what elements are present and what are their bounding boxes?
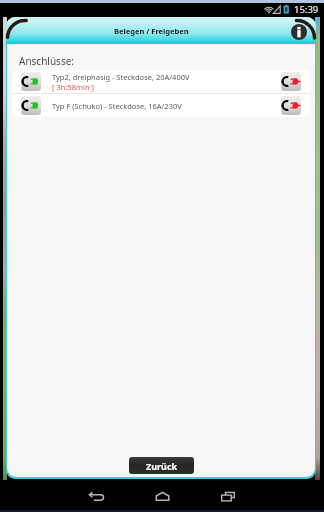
button[interactable]: Back — [79, 480, 113, 512]
button[interactable]: Freigeben — [12, 94, 310, 117]
staticText: [ 3h:58min ] — [52, 82, 94, 92]
button[interactable]: Belegen — [281, 96, 301, 115]
button[interactable]: Recents — [211, 480, 245, 512]
button[interactable]: Zurück — [129, 457, 194, 474]
button[interactable]: Info — [291, 24, 307, 40]
staticText: Typ2, dreiphasig - Steckdose, 20A/400V — [52, 72, 190, 82]
staticText: Zurück — [146, 460, 178, 472]
staticText: Anschlüsse: — [19, 54, 74, 68]
button[interactable]: Freigeben — [21, 96, 41, 115]
staticText: Typ F (Schuko) - Steckdose, 16A/230V — [52, 101, 182, 111]
button[interactable]: Freigeben — [21, 72, 41, 91]
staticText: 15:39 — [294, 3, 319, 16]
button[interactable]: Freigeben — [12, 70, 310, 93]
staticText: Belegen / Freigeben — [114, 26, 189, 36]
button[interactable]: Belegen — [281, 72, 301, 91]
button[interactable]: Home — [145, 480, 179, 512]
